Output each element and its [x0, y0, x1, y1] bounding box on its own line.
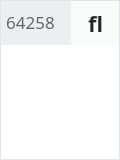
staticText: fl — [88, 8, 104, 38]
staticText: 64258 — [6, 11, 55, 34]
button[interactable]: fl ligature sample — [71, 0, 120, 45]
button[interactable]: 64258 — [0, 0, 71, 45]
